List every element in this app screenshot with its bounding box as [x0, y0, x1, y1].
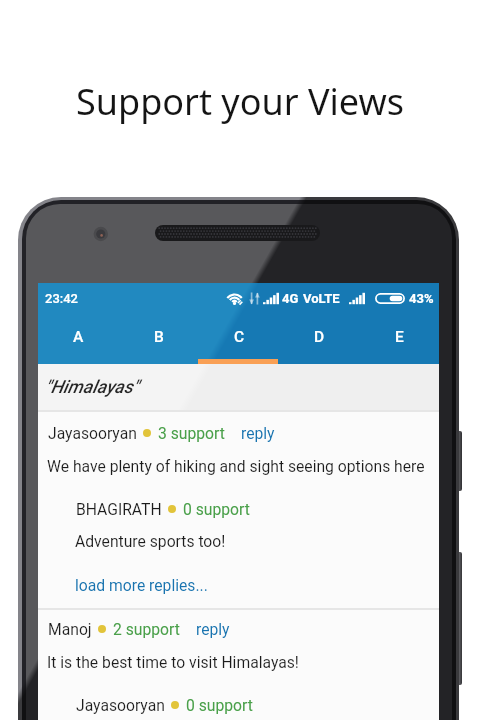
staticText: Jayasooryan: [48, 424, 137, 442]
staticText: load more replies...: [75, 576, 208, 594]
other: Wi-Fi: [226, 292, 243, 305]
staticText: 0 support: [183, 500, 250, 518]
staticText: 0 support: [186, 696, 253, 714]
staticText: Adventure sports too!: [75, 532, 226, 550]
staticText: A: [73, 328, 84, 346]
staticText: Manoj: [48, 620, 92, 638]
button[interactable]: C: [199, 314, 279, 359]
staticText: Support your Views: [76, 77, 404, 126]
staticText: BHAGIRATH: [76, 500, 162, 518]
other: Battery: [375, 293, 405, 304]
staticText: It is the best time to visit Himalayas!: [47, 653, 299, 671]
staticText: 23:42: [45, 291, 79, 306]
button[interactable]: A: [38, 314, 119, 359]
button[interactable]: D: [279, 314, 359, 359]
staticText: 3 support: [158, 424, 225, 442]
button[interactable]: reply: [196, 620, 230, 638]
staticText: 2 support: [113, 620, 180, 638]
staticText: reply: [196, 620, 230, 638]
staticText: D: [314, 328, 325, 346]
staticText: VoLTE: [303, 291, 340, 306]
staticText: 4G: [282, 291, 299, 306]
staticText: B: [154, 328, 164, 346]
staticText: Jayasooryan: [76, 696, 165, 714]
staticText: E: [395, 328, 404, 346]
button[interactable]: B: [119, 314, 199, 359]
staticText: "Himalayas": [45, 376, 139, 397]
button[interactable]: [38, 411, 439, 607]
button[interactable]: reply: [241, 424, 275, 442]
staticText: 43%: [409, 291, 434, 306]
staticText: C: [234, 328, 245, 346]
button[interactable]: load more replies...: [75, 576, 208, 594]
button[interactable]: [38, 609, 439, 720]
staticText: We have plenty of hiking and sight seein…: [47, 457, 425, 475]
staticText: reply: [241, 424, 275, 442]
button[interactable]: E: [359, 314, 439, 359]
